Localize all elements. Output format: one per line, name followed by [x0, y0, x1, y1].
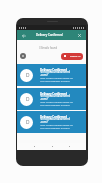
staticText: 3 Emails found: [39, 46, 57, 50]
staticText: AYT1034 Delivery is Done: [40, 79, 70, 82]
staticText: Delivery Confirmed: [40, 68, 67, 72]
button[interactable]: Recents: [67, 144, 71, 148]
button[interactable]: D: [17, 64, 86, 86]
staticText: .com>: [40, 97, 48, 101]
staticText: Delete All: [70, 55, 81, 58]
staticText: Your Order Placed: Order ID: [40, 76, 73, 79]
staticText: AYT1034 Delivery is Done: [40, 103, 70, 106]
staticText: <info@xxx.mailserverd: [40, 94, 70, 98]
staticText: D: [26, 72, 30, 79]
staticText: Delivery Confirmed: [40, 92, 67, 96]
staticText: <info@xxx.mailserverd: [40, 117, 70, 121]
button[interactable]: Select all: [20, 53, 26, 59]
staticText: Delivery Confirmed: [36, 33, 63, 37]
staticText: <info@xxx.mailserverd: [40, 70, 70, 74]
button[interactable]: Close: [77, 33, 82, 38]
staticText: Delivery Confirmed: [40, 115, 67, 119]
button[interactable]: Back: [21, 33, 26, 38]
staticText: AYT1034 Delivery is Done: [40, 126, 70, 129]
staticText: D: [26, 96, 30, 103]
button[interactable]: D: [17, 111, 86, 133]
staticText: .com>: [40, 73, 48, 77]
staticText: D: [26, 119, 30, 126]
staticText: Your Order Placed: Order ID: [40, 123, 73, 126]
staticText: .com>: [40, 120, 48, 124]
button[interactable]: Home: [50, 144, 54, 148]
button[interactable]: Back: [32, 144, 36, 148]
staticText: Your Order Placed: Order ID: [40, 100, 73, 103]
button[interactable]: Delete All: [61, 53, 83, 60]
button[interactable]: D: [17, 88, 86, 110]
